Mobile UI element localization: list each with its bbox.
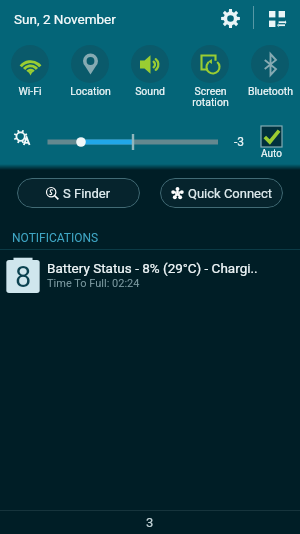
- staticText: S Finder: [63, 186, 111, 201]
- button[interactable]: [42, 133, 224, 151]
- button[interactable]: Bluetooth: [240, 37, 300, 112]
- button[interactable]: Auto: [252, 126, 291, 160]
- button[interactable]: Edit quick settings: [262, 0, 292, 37]
- staticText: Sun, 2 November: [14, 11, 116, 27]
- button[interactable]: 3: [0, 511, 300, 534]
- button[interactable]: Settings: [215, 0, 245, 37]
- staticText: 8: [15, 260, 32, 294]
- staticText: Battery Status - 8% (29°C) - Chargi..: [47, 260, 258, 276]
- button[interactable]: 8: [0, 250, 300, 300]
- staticText: Wi-Fi: [18, 85, 42, 97]
- staticText: 3: [146, 515, 154, 530]
- button[interactable]: Sound: [120, 37, 180, 112]
- staticText: Bluetooth: [248, 85, 293, 97]
- staticText: Auto: [261, 148, 282, 160]
- staticText: -3: [234, 135, 245, 149]
- staticText: Location: [70, 85, 111, 97]
- staticText: Screen rotation: [192, 85, 229, 109]
- staticText: NOTIFICATIONS: [12, 231, 99, 245]
- button[interactable]: Auto brightness: [6, 122, 38, 154]
- button[interactable]: S Finder: [17, 178, 140, 208]
- button[interactable]: Location: [60, 37, 120, 112]
- button[interactable]: Screen rotation: [180, 37, 240, 112]
- staticText: Quick Connect: [188, 186, 273, 201]
- button[interactable]: Wi-Fi: [0, 37, 60, 112]
- staticText: Sound: [135, 85, 165, 97]
- button[interactable]: Quick Connect: [160, 178, 283, 208]
- staticText: Time To Full: 02:24: [47, 277, 140, 290]
